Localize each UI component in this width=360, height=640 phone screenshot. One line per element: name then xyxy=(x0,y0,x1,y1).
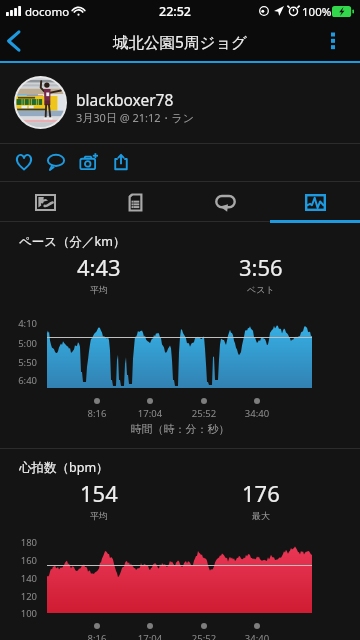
staticText: 心拍数（bpm） xyxy=(19,459,109,476)
staticText: 154 xyxy=(80,478,118,508)
button[interactable]: Like xyxy=(9,147,38,176)
staticText: 100% xyxy=(302,4,332,20)
staticText: 最大 xyxy=(252,510,270,521)
button[interactable]: Back xyxy=(0,22,34,61)
staticText: 34:40 xyxy=(227,632,287,640)
staticText: blackboxer78 xyxy=(76,89,174,110)
button[interactable]: Add photo xyxy=(74,147,103,176)
staticText: 時間（時：分：秒） xyxy=(0,422,360,436)
staticText: 4:43 xyxy=(77,252,121,282)
staticText: 176 xyxy=(242,478,280,508)
staticText: 5:50 xyxy=(0,356,37,369)
staticText: 3:56 xyxy=(239,252,283,282)
staticText: 平均 xyxy=(90,284,108,295)
staticText: 140 xyxy=(0,572,37,585)
staticText: ベスト xyxy=(247,284,275,295)
staticText: 6:40 xyxy=(0,374,37,387)
staticText: 180 xyxy=(0,536,37,549)
staticText: 120 xyxy=(0,590,37,603)
button[interactable]: More options xyxy=(320,22,360,61)
staticText: 17:04 xyxy=(120,632,180,640)
staticText: 4:10 xyxy=(0,317,37,330)
staticText: 8:16 xyxy=(67,632,127,640)
button[interactable]: blackboxer78 xyxy=(0,63,360,143)
staticText: 34:40 xyxy=(227,407,287,420)
staticText: 平均 xyxy=(90,510,108,521)
staticText: 160 xyxy=(0,554,37,567)
button[interactable]: Charts xyxy=(270,182,360,222)
staticText: 17:04 xyxy=(120,407,180,420)
staticText: 22:52 xyxy=(159,3,192,20)
staticText: 25:52 xyxy=(174,632,234,640)
staticText: 8:16 xyxy=(67,407,127,420)
staticText: docomo xyxy=(25,4,70,20)
button[interactable]: Details xyxy=(90,182,180,222)
staticText: ペース（分／km） xyxy=(19,233,126,250)
staticText: 5:00 xyxy=(0,337,37,350)
button[interactable]: Laps xyxy=(180,182,270,222)
staticText: 100 xyxy=(0,607,37,620)
staticText: 3月30日 @ 21:12・ラン xyxy=(76,110,195,125)
staticText: 城北公園5周ジョグ xyxy=(0,31,360,52)
button[interactable]: Map route xyxy=(0,182,90,222)
staticText: 25:52 xyxy=(174,407,234,420)
button[interactable]: Share xyxy=(106,147,135,176)
button[interactable]: Comment xyxy=(41,147,70,176)
